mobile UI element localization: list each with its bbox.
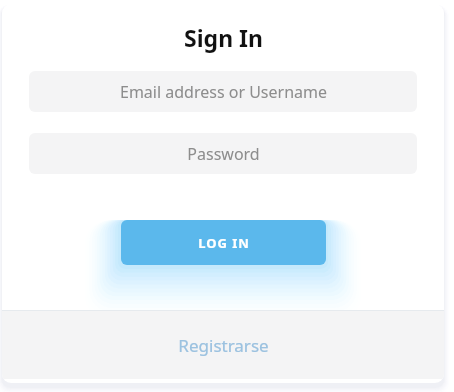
button[interactable]: Email address or Username [29, 71, 417, 112]
staticText: Registrarse [178, 334, 269, 357]
staticText: Password [187, 143, 260, 165]
staticText: LOG IN [198, 234, 250, 252]
staticText: Email address or Username [120, 81, 327, 103]
button[interactable]: LOG IN [121, 220, 326, 265]
button[interactable]: Registrarse [2, 311, 444, 379]
staticText: Sign In [184, 22, 263, 53]
button[interactable]: Password [29, 133, 417, 174]
